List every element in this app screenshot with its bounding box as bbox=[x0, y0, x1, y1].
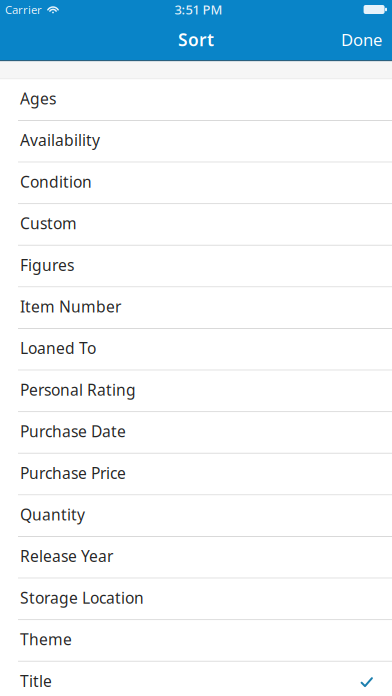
button[interactable]: Ages bbox=[0, 79, 392, 120]
button[interactable]: Theme bbox=[0, 620, 392, 661]
button[interactable]: Item Number bbox=[0, 287, 392, 328]
staticText: Purchase Date bbox=[20, 421, 126, 442]
staticText: Personal Rating bbox=[20, 379, 136, 400]
staticText: Release Year bbox=[20, 546, 113, 566]
staticText: Ages bbox=[20, 88, 56, 109]
staticText: Quantity bbox=[20, 504, 85, 525]
button[interactable]: Quantity bbox=[0, 495, 392, 536]
button[interactable]: Purchase Date bbox=[0, 412, 392, 453]
staticText: Title bbox=[20, 670, 52, 691]
button[interactable]: Title bbox=[0, 662, 392, 696]
button[interactable]: Personal Rating bbox=[0, 371, 392, 411]
staticText: 3:51 PM bbox=[174, 1, 222, 18]
button[interactable]: Purchase Price bbox=[0, 454, 392, 494]
staticText: Item Number bbox=[20, 296, 121, 317]
button[interactable]: Availability bbox=[0, 121, 392, 162]
staticText: Purchase Price bbox=[20, 462, 126, 483]
staticText: Loaned To bbox=[20, 338, 96, 358]
staticText: Figures bbox=[20, 254, 74, 275]
staticText: Condition bbox=[20, 171, 92, 192]
staticText: Carrier bbox=[5, 2, 42, 17]
button[interactable]: Release Year bbox=[0, 537, 392, 578]
staticText: Custom bbox=[20, 213, 77, 234]
staticText: Theme bbox=[20, 629, 72, 650]
button[interactable]: Storage Location bbox=[0, 579, 392, 619]
button[interactable]: Custom bbox=[0, 204, 392, 245]
staticText: Sort bbox=[178, 28, 214, 51]
button[interactable]: Condition bbox=[0, 163, 392, 203]
staticText: Availability bbox=[20, 130, 100, 150]
button[interactable]: Done bbox=[330, 18, 392, 60]
staticText: Storage Location bbox=[20, 587, 144, 608]
button[interactable]: Figures bbox=[0, 246, 392, 286]
staticText: Done bbox=[341, 28, 382, 50]
button[interactable]: Loaned To bbox=[0, 329, 392, 370]
